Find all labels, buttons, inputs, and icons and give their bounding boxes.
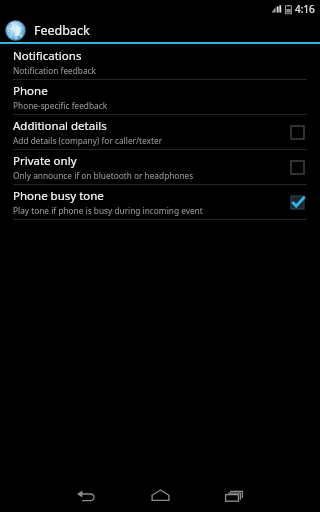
- button[interactable]: Feedback: [0, 18, 320, 42]
- button[interactable]: Unchecked: [286, 156, 308, 178]
- button[interactable]: Recent apps: [199, 478, 269, 512]
- staticText: Notifications: [13, 48, 82, 64]
- staticText: Play tone if phone is busy during incomi…: [13, 205, 203, 216]
- button[interactable]: Phone: [0, 80, 320, 114]
- button[interactable]: Notifications: [0, 45, 320, 79]
- staticText: Additional details: [13, 118, 107, 134]
- staticText: Add details (company) for caller/texter: [13, 135, 163, 146]
- staticText: Notification feedback: [13, 65, 97, 76]
- button[interactable]: Unchecked: [286, 121, 308, 143]
- staticText: Only announce if on bluetooth or headpho…: [13, 170, 194, 181]
- button[interactable]: Private only: [0, 150, 320, 184]
- staticText: Phone-specific feedback: [13, 100, 108, 111]
- button[interactable]: Checked: [286, 191, 308, 213]
- button[interactable]: Back: [51, 478, 121, 512]
- staticText: Phone: [13, 83, 48, 99]
- staticText: Phone busy tone: [13, 188, 104, 204]
- button[interactable]: Phone busy tone: [0, 185, 320, 219]
- staticText: Private only: [13, 153, 77, 169]
- staticText: Feedback: [34, 22, 90, 39]
- button[interactable]: Additional details: [0, 115, 320, 149]
- button[interactable]: Home: [125, 478, 195, 512]
- staticText: 4:16: [295, 2, 315, 16]
